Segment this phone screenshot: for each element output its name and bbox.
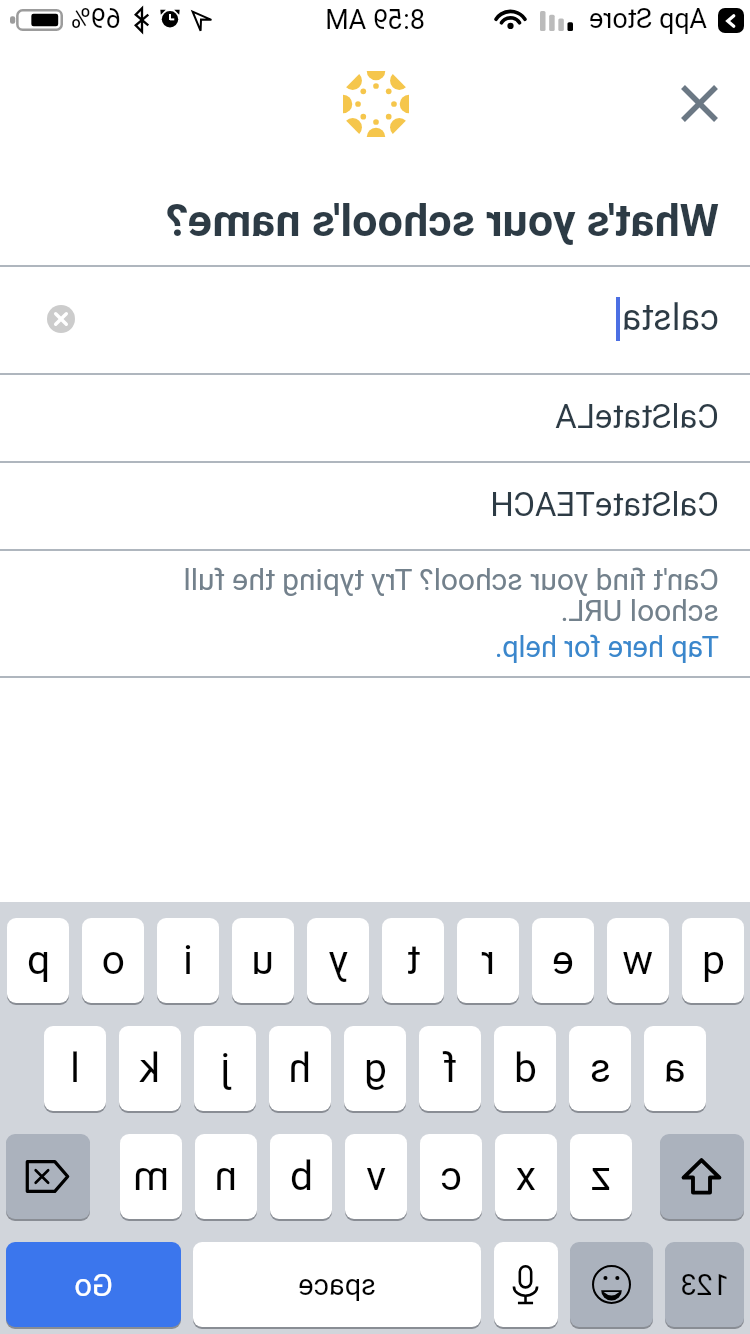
button[interactable]: Shift: [660, 1134, 744, 1219]
button[interactable]: t: [382, 918, 444, 1003]
button[interactable]: d: [494, 1026, 556, 1111]
staticText: k: [139, 1044, 160, 1092]
button[interactable]: Emoji: [570, 1242, 653, 1327]
button[interactable]: y: [307, 918, 369, 1003]
button[interactable]: r: [457, 918, 519, 1003]
staticText: 8:59 AM: [325, 4, 425, 36]
staticText: Go: [74, 1267, 113, 1303]
button[interactable]: i: [157, 918, 219, 1003]
button[interactable]: Backspace: [6, 1134, 90, 1219]
button[interactable]: CalStateTEACH: [0, 461, 750, 549]
staticText: c: [440, 1152, 462, 1200]
button[interactable]: Back to App Store: [718, 8, 744, 33]
button[interactable]: e: [532, 918, 594, 1003]
staticText: Tap here for help.: [494, 630, 719, 664]
button[interactable]: 123: [665, 1242, 744, 1327]
staticText: 123: [680, 1268, 729, 1302]
staticText: t: [406, 936, 420, 984]
button[interactable]: m: [120, 1134, 182, 1219]
button[interactable]: Close: [666, 69, 734, 137]
staticText: 69%: [70, 3, 121, 35]
button[interactable]: h: [269, 1026, 331, 1111]
button[interactable]: n: [195, 1134, 257, 1219]
staticText: h: [288, 1044, 311, 1092]
button[interactable]: q: [682, 918, 744, 1003]
staticText: g: [363, 1044, 387, 1092]
staticText: space: [298, 1268, 376, 1302]
button[interactable]: v: [345, 1134, 407, 1219]
staticText: j: [220, 1044, 230, 1092]
staticText: x: [515, 1152, 536, 1200]
button[interactable]: u: [232, 918, 294, 1003]
staticText: q: [701, 936, 725, 984]
button[interactable]: w: [607, 918, 669, 1003]
staticText: m: [133, 1152, 169, 1200]
staticText: e: [552, 936, 574, 984]
button[interactable]: Can't find your school? Try typing the f…: [0, 549, 750, 677]
button[interactable]: Go: [6, 1242, 181, 1327]
button[interactable]: c: [420, 1134, 482, 1219]
staticText: App Store: [589, 3, 707, 35]
staticText: d: [513, 1044, 537, 1092]
button[interactable]: Dictation: [494, 1242, 558, 1327]
button[interactable]: z: [570, 1134, 632, 1219]
staticText: s: [589, 1044, 611, 1092]
staticText: CalStateTEACH: [490, 485, 719, 524]
button[interactable]: space: [193, 1242, 481, 1327]
button[interactable]: f: [419, 1026, 481, 1111]
staticText: y: [328, 936, 348, 984]
button[interactable]: g: [344, 1026, 406, 1111]
button[interactable]: b: [270, 1134, 332, 1219]
staticText: p: [26, 936, 50, 984]
button[interactable]: s: [569, 1026, 631, 1111]
staticText: v: [366, 1152, 386, 1200]
button[interactable]: calsta: [0, 265, 750, 373]
button[interactable]: l: [44, 1026, 106, 1111]
staticText: What's your school's name?: [165, 194, 719, 247]
button[interactable]: CalStateLA: [0, 373, 750, 461]
staticText: CalStateLA: [555, 397, 719, 436]
button[interactable]: j: [194, 1026, 256, 1111]
button[interactable]: a: [644, 1026, 706, 1111]
button[interactable]: Clear text: [32, 290, 90, 348]
staticText: n: [214, 1152, 237, 1200]
button[interactable]: p: [7, 918, 69, 1003]
staticText: o: [101, 936, 125, 984]
staticText: i: [183, 936, 193, 984]
staticText: calsta: [621, 297, 719, 339]
staticText: l: [70, 1044, 80, 1092]
staticText: Can't find your school? Try typing the f…: [173, 562, 719, 629]
staticText: u: [251, 936, 274, 984]
staticText: w: [622, 936, 653, 984]
button[interactable]: x: [495, 1134, 557, 1219]
staticText: f: [442, 1044, 457, 1092]
staticText: a: [663, 1044, 686, 1092]
button[interactable]: o: [82, 918, 144, 1003]
staticText: b: [289, 1152, 313, 1200]
staticText: r: [481, 936, 495, 984]
staticText: z: [590, 1152, 611, 1200]
button[interactable]: k: [119, 1026, 181, 1111]
